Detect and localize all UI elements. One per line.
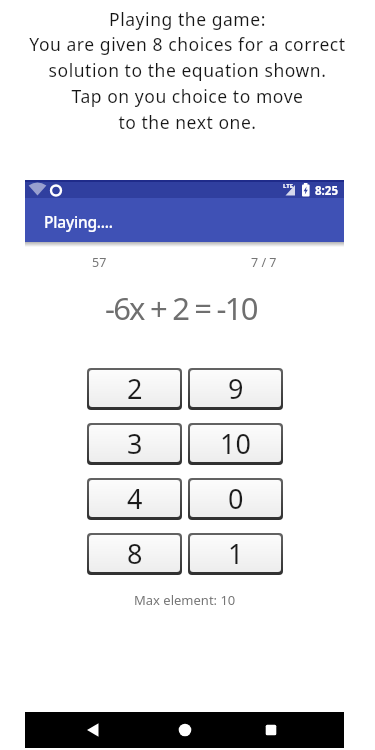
button[interactable] [177, 722, 193, 738]
button[interactable]: 0 [190, 480, 281, 517]
staticText: 1 [228, 535, 244, 572]
staticText: Playing the game: You are given 8 choice… [0, 7, 375, 135]
staticText: 3 [127, 425, 143, 462]
staticText: 8 [127, 535, 143, 572]
staticText: 4 [127, 480, 143, 517]
staticText: -6x + 2 = -10 [105, 287, 257, 329]
button[interactable]: 2 [89, 370, 180, 407]
staticText: 0 [228, 480, 244, 517]
button[interactable] [85, 722, 101, 738]
staticText: 10 [220, 425, 251, 462]
staticText: 2 [127, 370, 143, 407]
button[interactable]: 3 [89, 425, 180, 462]
button[interactable]: 10 [190, 425, 281, 462]
staticText: 57 [92, 254, 107, 271]
staticText: 7 / 7 [251, 254, 277, 271]
staticText: 8:25 [315, 183, 338, 199]
staticText: Playing.... [44, 211, 113, 232]
staticText: 9 [228, 370, 244, 407]
button[interactable]: 4 [89, 480, 180, 517]
button[interactable] [263, 722, 279, 738]
staticText: Max element: 10 [134, 591, 236, 609]
staticText: LTE [283, 182, 294, 190]
button[interactable]: 1 [190, 535, 281, 572]
button[interactable]: 9 [190, 370, 281, 407]
button[interactable]: 8 [89, 535, 180, 572]
